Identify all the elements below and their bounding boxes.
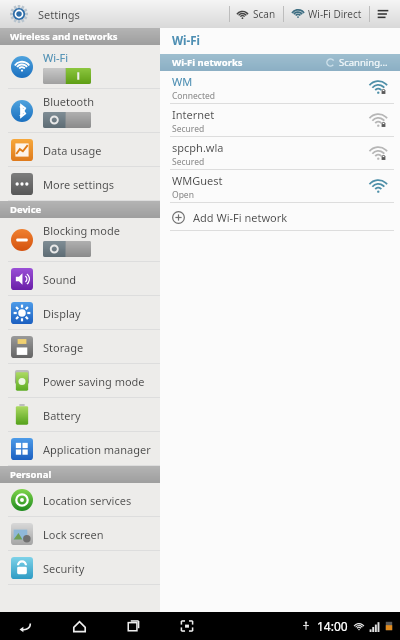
button[interactable]: Data usage (0, 133, 160, 167)
button[interactable]: Bluetooth (0, 89, 160, 133)
staticText: Wi-Fi (43, 50, 69, 65)
staticText: Secured (172, 123, 205, 135)
staticText: Scanning... (339, 56, 388, 69)
staticText: Power saving mode (43, 374, 145, 389)
staticText: Device (10, 203, 42, 216)
staticText: WM (172, 74, 193, 89)
staticText: Wi-Fi Direct (308, 7, 362, 21)
button[interactable]: Power saving mode (0, 364, 160, 398)
staticText: Storage (43, 340, 84, 355)
staticText: WMGuest (172, 173, 223, 188)
staticText: Wi-Fi (172, 33, 200, 49)
button[interactable]: Security (0, 551, 160, 585)
staticText: Settings (38, 7, 80, 22)
button[interactable]: Lock screen (0, 517, 160, 551)
staticText: Open (172, 189, 194, 201)
button[interactable]: Scan (230, 0, 283, 28)
button[interactable]: Sound (0, 262, 160, 296)
button[interactable]: Display (0, 296, 160, 330)
staticText: Sound (43, 272, 77, 287)
button[interactable]: Battery (0, 398, 160, 432)
button[interactable]: Add Wi-Fi network (160, 203, 400, 231)
button[interactable]: WM (160, 71, 400, 104)
button[interactable]: spcph.wla (160, 137, 400, 170)
button[interactable]: Location services (0, 483, 160, 517)
staticText: 14:00 (317, 618, 348, 634)
button[interactable]: Wi-Fi (0, 45, 160, 89)
staticText: Data usage (43, 143, 102, 158)
button[interactable]: Home (66, 613, 92, 639)
button[interactable]: Blocking mode (0, 218, 160, 262)
button[interactable]: Settings (8, 3, 30, 25)
button[interactable]: Internet (160, 104, 400, 137)
staticText: Battery (43, 408, 81, 423)
button[interactable]: Application manager (0, 432, 160, 466)
staticText: Add Wi-Fi network (193, 210, 288, 225)
staticText: Connected (172, 90, 215, 102)
button[interactable]: Wi-Fi Direct (284, 0, 369, 28)
staticText: Wi-Fi networks (172, 56, 243, 69)
staticText: Display (43, 306, 81, 321)
button[interactable]: Screenshot (174, 613, 200, 639)
staticText: Scan (253, 7, 276, 21)
staticText: Wireless and networks (10, 30, 118, 43)
staticText: Application manager (43, 442, 151, 457)
button[interactable]: Storage (0, 330, 160, 364)
staticText: Lock screen (43, 527, 104, 542)
staticText: Bluetooth (43, 94, 95, 109)
staticText: Personal (10, 468, 52, 481)
staticText: Secured (172, 156, 205, 168)
staticText: Security (43, 561, 85, 576)
staticText: Blocking mode (43, 223, 120, 238)
staticText: Location services (43, 493, 132, 508)
button[interactable]: More options (370, 0, 396, 28)
button[interactable]: WMGuest (160, 170, 400, 203)
button[interactable]: Recents (120, 613, 146, 639)
staticText: Internet (172, 107, 215, 122)
button[interactable]: More settings (0, 167, 160, 201)
staticText: More settings (43, 177, 115, 192)
button[interactable]: Back (12, 613, 38, 639)
staticText: spcph.wla (172, 140, 224, 155)
